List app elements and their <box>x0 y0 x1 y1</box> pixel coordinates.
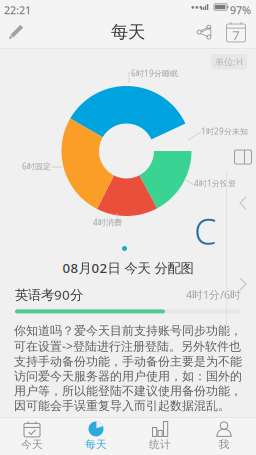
staticText: 每天 <box>111 21 145 43</box>
staticText: 今天 <box>21 438 43 451</box>
staticText: 6时19分睡眠 <box>131 68 178 79</box>
button[interactable]: Edit <box>0 15 33 49</box>
staticText: 08月02日 今天 分配图 <box>62 259 193 277</box>
button[interactable]: 统计 <box>128 417 192 455</box>
button[interactable]: 每天 <box>64 417 128 455</box>
button[interactable]: Previous <box>231 192 255 214</box>
staticText: C <box>194 207 216 255</box>
button[interactable]: 英语考90分 <box>0 286 256 319</box>
button[interactable]: Share <box>188 15 220 49</box>
button[interactable]: 今天 <box>0 417 64 455</box>
button[interactable]: 我 <box>192 417 256 455</box>
staticText: 我 <box>218 438 229 451</box>
staticText: 单位:H <box>215 55 243 68</box>
button[interactable]: Split view <box>231 147 255 167</box>
button[interactable]: Next <box>231 273 255 295</box>
staticText: 1时29分未知 <box>201 126 248 137</box>
staticText: 4时1分/6时 <box>186 287 241 302</box>
staticText: 7 <box>232 26 240 44</box>
button[interactable]: Calendar <box>219 15 253 49</box>
staticText: 97% <box>230 3 251 17</box>
staticText: 4时1分投资 <box>194 178 236 189</box>
staticText: 英语考90分 <box>15 286 83 303</box>
staticText: 6时固定 <box>22 161 51 172</box>
staticText: 每天 <box>85 438 107 451</box>
staticText: 统计 <box>149 438 171 451</box>
staticText: 你知道吗？爱今天目前支持账号同步功能，可在设置->登陆进行注册登陆。另外软件也支… <box>14 323 242 413</box>
staticText: 22:21 <box>4 3 31 17</box>
staticText: ••• <box>191 1 203 13</box>
staticText: 4时消费 <box>93 217 122 228</box>
